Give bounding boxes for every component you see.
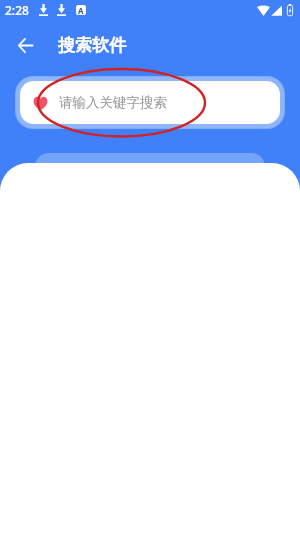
staticText: 请输入关键字搜索 xyxy=(59,94,167,111)
staticText: 搜索软件 xyxy=(58,35,126,56)
button[interactable]: Back xyxy=(12,32,38,58)
staticText: 2:28 xyxy=(5,2,29,18)
staticText: A xyxy=(78,5,84,15)
button[interactable]: 请输入关键字搜索 xyxy=(20,81,280,124)
